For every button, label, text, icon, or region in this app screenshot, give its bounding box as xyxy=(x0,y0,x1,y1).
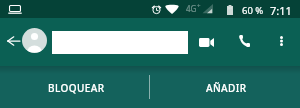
button[interactable]: AÑADIR xyxy=(150,66,300,108)
button[interactable]: Video call xyxy=(192,30,221,55)
staticText: BLOQUEAR xyxy=(48,81,105,95)
button[interactable]: Voice call xyxy=(232,28,257,53)
staticText: + xyxy=(197,2,201,10)
button[interactable]: More options xyxy=(269,28,294,53)
staticText: 7:11 xyxy=(270,3,292,18)
button[interactable]: Contact photo xyxy=(22,28,47,53)
staticText: AÑADIR xyxy=(206,81,247,95)
staticText: 4G xyxy=(186,3,197,14)
staticText: 60 % xyxy=(242,4,264,17)
button[interactable]: BLOQUEAR xyxy=(0,66,150,108)
button[interactable]: Back xyxy=(2,28,24,53)
